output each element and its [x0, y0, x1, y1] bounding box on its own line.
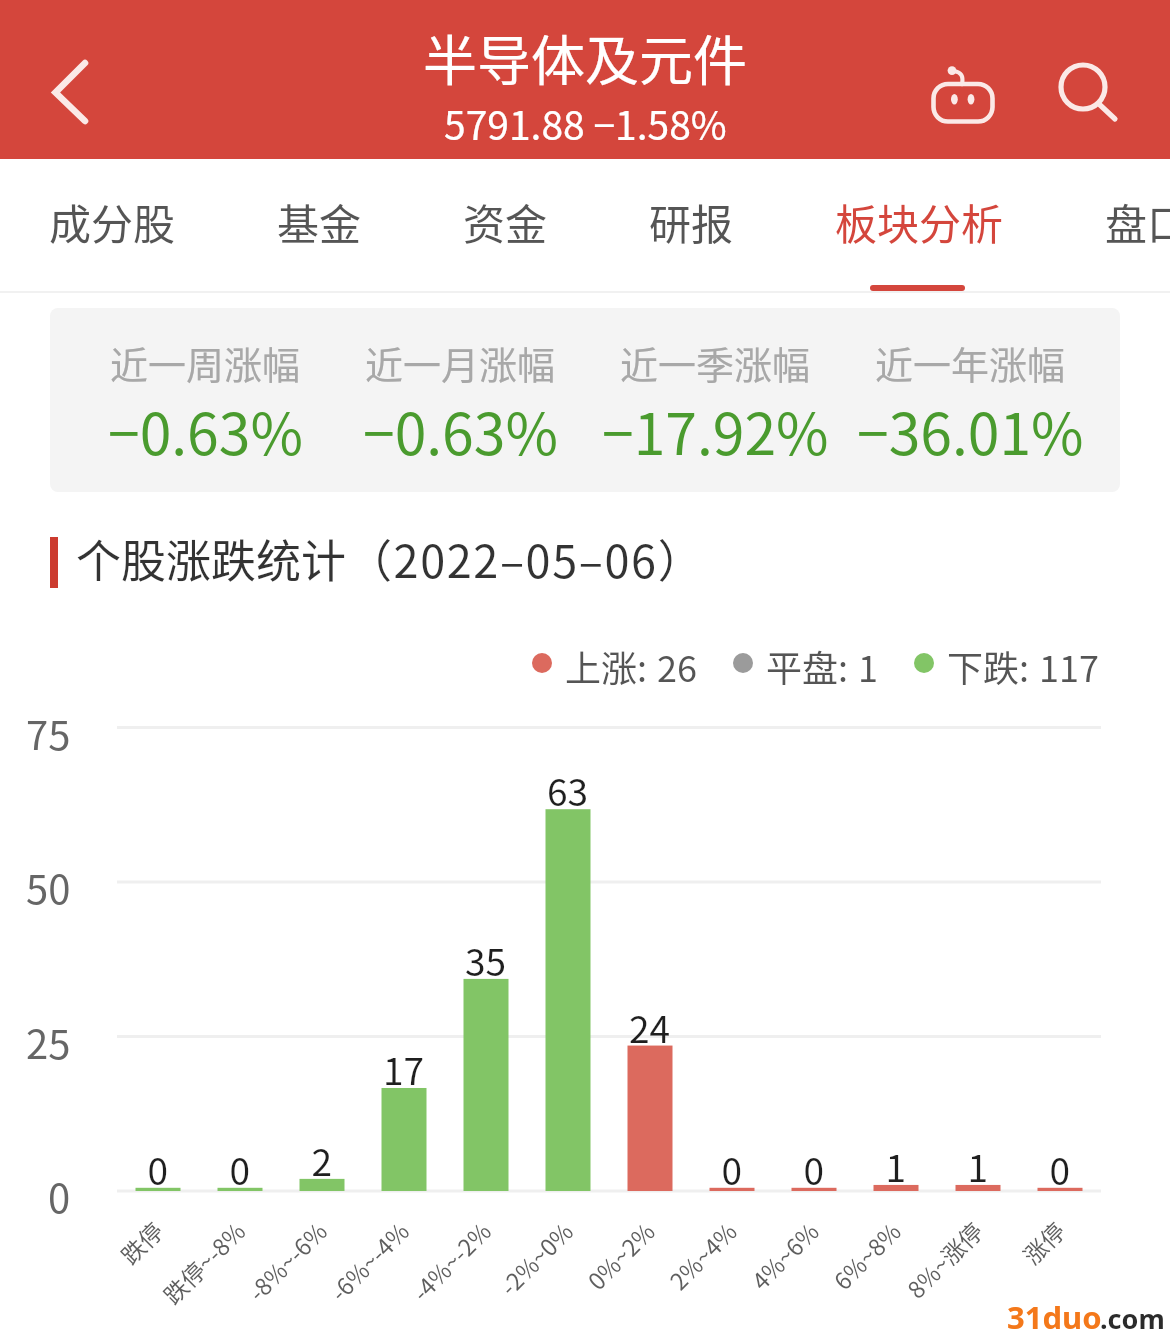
staticText: 近一月涨幅	[365, 335, 556, 390]
button[interactable]: 成分股	[49, 155, 176, 287]
button[interactable]: 板块分析	[835, 155, 1004, 287]
button[interactable]: 研报	[649, 155, 734, 287]
staticText: 近一季涨幅	[620, 335, 811, 390]
staticText: −17.92%	[602, 389, 829, 472]
staticText: 上涨:	[565, 640, 648, 686]
button[interactable]: 基金	[277, 155, 362, 287]
staticText: 平盘:	[766, 640, 849, 686]
staticText: −0.63%	[108, 389, 303, 472]
staticText: 近一周涨幅	[110, 335, 301, 390]
staticText: 资金	[463, 191, 548, 252]
button[interactable]: 平盘:	[733, 640, 878, 686]
staticText: 成分股	[49, 191, 176, 252]
staticText: 5791.88 −1.58%	[444, 95, 727, 151]
staticText: 117	[1039, 640, 1099, 686]
staticText: 26	[657, 640, 697, 686]
button[interactable]: Back	[0, 0, 140, 159]
staticText: 研报	[649, 191, 734, 252]
button[interactable]: 上涨:	[532, 640, 697, 686]
staticText: 板块分析	[835, 191, 1004, 252]
button[interactable]: 资金	[463, 155, 548, 287]
staticText: 近一年涨幅	[875, 335, 1066, 390]
button[interactable]: 下跌:	[914, 640, 1099, 686]
staticText: 半导体及元件	[423, 18, 747, 96]
button[interactable]: 盘口	[1105, 155, 1170, 287]
staticText: 个股涨跌统计	[76, 526, 347, 591]
staticText: 1	[858, 640, 878, 686]
staticText: （2022–05–06）	[347, 526, 705, 591]
staticText: 盘口	[1105, 191, 1170, 252]
staticText: 下跌:	[947, 640, 1030, 686]
staticText: −0.63%	[363, 389, 558, 472]
staticText: 基金	[277, 191, 362, 252]
button[interactable]: Assistant	[910, 0, 1020, 159]
staticText: −36.01%	[857, 389, 1084, 472]
button[interactable]: Search	[1030, 0, 1150, 159]
